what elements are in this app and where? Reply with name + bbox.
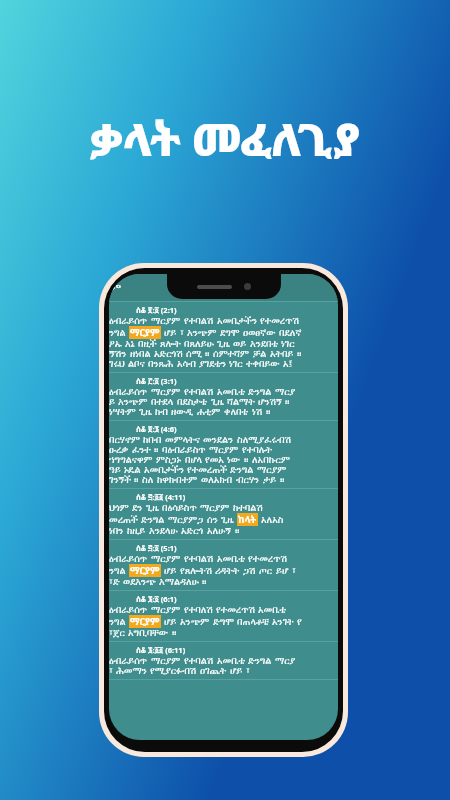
staticText: ድንግል [248,656,272,666]
staticText: ጸሎት [160,339,181,349]
button[interactable]: ሰቆ ፬:፮ (4:6) [109,421,338,489]
staticText: የተባለሽ [184,605,213,615]
staticText: ሰቆ ፪:፩ (2:1) [136,305,177,315]
staticText: ፣ድ [109,577,120,587]
staticText: ። [285,397,290,407]
staticText: የ [297,617,302,627]
staticText: ገሩህ [109,359,125,369]
staticText: ። [205,349,210,359]
staticText: እማልዳለሁ [159,577,199,587]
staticText: ወለአክብ [201,475,233,485]
staticText: ልቦና [128,359,145,369]
staticText: የተመረጥሽ [216,605,255,615]
staticText: ፣ [109,666,113,676]
staticText: ዕብራይሰጥ [109,316,148,326]
staticText: ሰን [207,515,218,525]
staticText: ሰምተሻም [213,349,250,359]
staticText: የተመረጥሽ [248,554,287,564]
staticText: ሆይ [164,328,177,338]
button[interactable]: ሰቆ ፭:፩፩ (4:11) [109,489,338,540]
staticText: ምስጋኑ [156,455,182,465]
staticText: አመቤታችን [217,316,257,326]
staticText: ፣ [292,566,296,576]
staticText: ሐቲም [197,407,221,417]
staticText: ይ [109,397,115,407]
staticText: ፈንተ [132,445,151,455]
staticText: ኝሽን [109,349,127,359]
button[interactable]: ሰቆ ፮:፩ (6:1) [109,591,338,642]
staticText: ስለ [142,475,154,485]
staticText: ጊዜ [217,339,230,349]
staticText: መንደልን [203,435,234,445]
staticText: ዐገጨት [200,666,227,676]
staticText: ዓይ [109,465,121,475]
staticText: ሆይ [230,666,243,676]
staticText: ሆንሽኝ [258,397,282,407]
staticText: ሆይ [164,617,177,627]
staticText: ከላት [238,513,257,526]
staticText: ነው [227,455,241,465]
staticText: ከዋክብተም [157,475,198,485]
staticText: ሰቆ ፮:፩ (6:1) [136,594,177,604]
button[interactable]: ሰቆ ፮:፩፩ (6:11) [109,642,338,680]
staticText: ደግሞ [220,328,240,338]
staticText: ወደእንጭ [123,577,156,587]
staticText: ኀግግልናዋም [109,455,153,465]
staticText: ብርሃን [236,475,260,485]
staticText: በሆላ [185,455,202,465]
staticText: ሰሚ [186,349,202,359]
staticText: እንደበቴ [250,339,278,349]
staticText: ስለሚያፈሩብሽ [237,435,292,445]
staticText: ጊዜ [146,503,159,513]
staticText: ማርያም [200,503,230,513]
button[interactable]: ም [109,274,338,301]
staticText: ም [110,282,122,294]
staticText: አትበይ [270,349,294,359]
button[interactable]: ሰቆ ፫:፩ (3:1) [109,373,338,421]
staticText: ዖኡ [109,339,122,349]
staticText: ጊዜ [221,515,234,525]
staticText: ለአበኩርም [252,455,290,465]
staticText: የመአ [205,455,224,465]
button[interactable]: ሰቆ ፪:፩ (2:1) [109,302,338,373]
staticText: አድርጎ [181,526,204,536]
staticText: አለአስ [261,515,284,525]
staticText: ያገደቴን [199,359,226,369]
staticText: እንጭም [187,328,217,338]
staticText: ማርያም [130,615,160,628]
staticText: ፣ጀር [109,628,125,638]
staticText: ሰቆ ፭:፩፩ (4:11) [136,492,186,502]
staticText: ጋሽ [243,566,256,576]
staticText: ጊዜ [211,397,224,407]
staticText: ማርያም [209,445,239,455]
staticText: ንግል [109,566,126,576]
staticText: ። [172,628,177,638]
staticText: ፣ [246,666,250,676]
button[interactable]: ሰቆ ፭:፩ (5:1) [109,540,338,591]
staticText: ዐወፀኛው [243,328,276,338]
staticText: ቀለበቴ [224,407,249,417]
staticText: ነሣትም [109,407,136,417]
staticText: ዕብራይሰጥ [109,605,148,615]
staticText: ሆይ [164,566,177,576]
staticText: ። [154,445,159,455]
staticText: መምላትና [165,435,200,445]
staticText: ። [202,577,207,587]
staticText: የሚያርፉብሽ [150,666,197,676]
staticText: ቻል [253,349,267,359]
staticText: ማርያ [275,656,296,666]
staticText: ። [297,349,302,359]
staticText: ነበን [109,526,124,536]
staticText: ማርያም [151,554,181,564]
staticText: ድንግል [230,465,254,475]
staticText: ማርያም [130,326,160,339]
staticText: የተባሉት [242,445,272,455]
staticText: አንጭም [180,617,210,627]
staticText: ገንኝች [109,475,131,485]
staticText: ዘነበል [130,349,151,359]
staticText: አመቤቴ [258,605,286,615]
staticText: ማርያም [151,316,181,326]
staticText: ንግል [109,617,126,627]
staticText: መረጠች [109,515,138,525]
staticText: ከዚይ [127,526,146,536]
